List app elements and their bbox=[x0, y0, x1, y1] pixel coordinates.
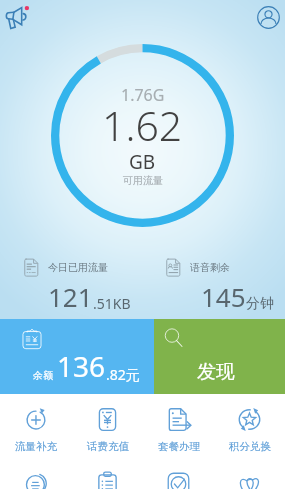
button[interactable]: 套餐办理 bbox=[143, 394, 214, 453]
button[interactable]: Item bbox=[72, 458, 143, 489]
button[interactable]: Item bbox=[0, 458, 72, 489]
staticText: 1.62 bbox=[102, 97, 183, 153]
staticText: 121 bbox=[48, 279, 93, 314]
button[interactable]: Announcements bbox=[2, 3, 32, 33]
button[interactable]: 积分兑换 bbox=[214, 394, 285, 453]
staticText: 136 bbox=[57, 347, 106, 385]
staticText: 套餐办理 bbox=[158, 440, 200, 453]
staticText: 积分兑换 bbox=[229, 440, 271, 453]
button[interactable]: 今日已用流量 bbox=[0, 254, 142, 314]
staticText: 话费充值 bbox=[87, 440, 129, 453]
button[interactable]: 流量补充 bbox=[0, 394, 72, 453]
staticText: 发现 bbox=[197, 360, 235, 384]
staticText: GB bbox=[129, 149, 156, 175]
staticText: 可用流量 bbox=[123, 174, 163, 187]
staticText: 余额 bbox=[33, 369, 53, 382]
button[interactable]: 语音剩余 bbox=[142, 254, 285, 314]
staticText: 145 bbox=[201, 279, 246, 314]
button[interactable]: Profile bbox=[254, 3, 282, 31]
staticText: .82元 bbox=[106, 365, 140, 384]
button[interactable]: 余额 bbox=[0, 319, 154, 394]
staticText: 语音剩余 bbox=[190, 261, 230, 274]
staticText: 今日已用流量 bbox=[48, 261, 108, 274]
staticText: 流量补充 bbox=[15, 440, 57, 453]
button[interactable]: Item bbox=[214, 458, 285, 489]
button[interactable]: 话费充值 bbox=[72, 394, 143, 453]
button[interactable]: 发现 bbox=[154, 319, 285, 394]
staticText: 分钟 bbox=[246, 295, 274, 313]
staticText: .51KB bbox=[93, 294, 131, 313]
button[interactable]: Item bbox=[143, 458, 214, 489]
staticText: 1.76G bbox=[121, 84, 165, 106]
